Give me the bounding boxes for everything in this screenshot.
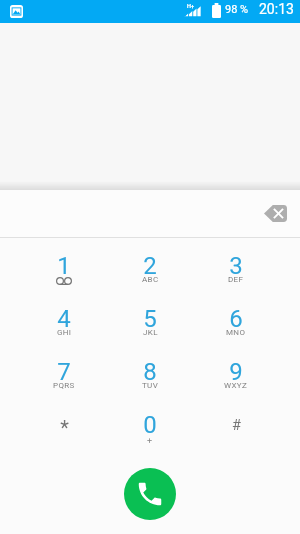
staticText: * [60,416,69,439]
button[interactable]: Backspace [255,193,295,233]
staticText: PQRS [53,381,75,390]
staticText: 8 [143,358,157,386]
staticText: ABC [142,275,159,284]
button[interactable]: Call [124,468,176,520]
staticText: GHI [57,328,72,337]
staticText: 6 [229,305,243,333]
staticText: 3 [229,252,243,280]
staticText: WXYZ [224,381,248,390]
staticText: TUV [142,381,159,390]
button[interactable]: 0 [107,403,193,456]
staticText: DEF [228,275,244,284]
button[interactable]: 2 [107,244,193,297]
staticText: 4 [57,305,71,333]
staticText: + [147,436,153,447]
button[interactable]: * [21,403,107,456]
button[interactable]: 5 [107,297,193,350]
button[interactable]: 8 [107,350,193,403]
button[interactable]: 7 [21,350,107,403]
staticText: 98 % [225,3,249,16]
staticText: 7 [57,358,71,386]
staticText: 2 [143,252,157,280]
button[interactable]: 4 [21,297,107,350]
staticText: # [232,417,241,434]
staticText: JKL [143,328,158,337]
staticText: 5 [143,305,157,333]
staticText: 0 [143,411,157,439]
staticText: 9 [229,358,243,386]
button[interactable]: 6 [193,297,279,350]
staticText: MNO [226,328,246,337]
button[interactable]: 1 [21,244,107,297]
staticText: 20:13 [259,1,294,17]
staticText: H+ [187,3,195,9]
button[interactable]: 3 [193,244,279,297]
button[interactable]: 9 [193,350,279,403]
button[interactable]: # [193,403,279,456]
staticText: 1 [57,252,71,280]
